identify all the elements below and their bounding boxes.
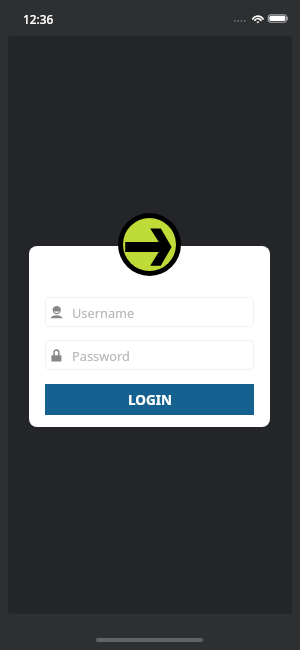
staticText: 12:36 (23, 11, 54, 27)
button[interactable]: Username (45, 297, 254, 327)
staticText: Username (72, 304, 135, 321)
button[interactable]: Password (45, 340, 254, 370)
other: App logo (118, 213, 181, 276)
staticText: LOGIN (128, 391, 172, 409)
button[interactable]: LOGIN (45, 384, 254, 415)
staticText: Password (72, 347, 130, 364)
